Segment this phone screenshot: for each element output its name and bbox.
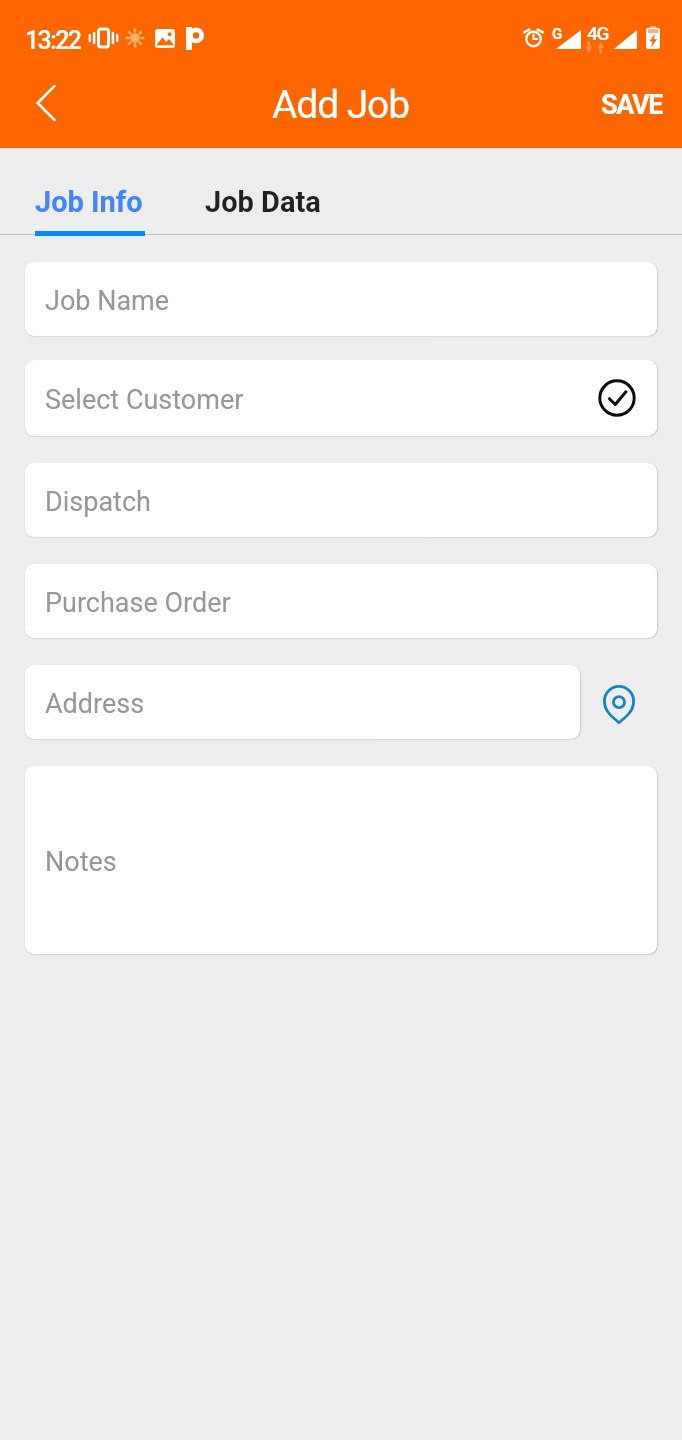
staticText: Address	[45, 688, 145, 720]
staticText: Job Info	[35, 185, 143, 219]
button[interactable]: Job Name	[25, 262, 657, 336]
button[interactable]: Purchase Order	[25, 564, 657, 638]
staticText: Job Data	[205, 185, 321, 219]
button[interactable]: Job Data	[177, 148, 349, 236]
staticText: 13:22	[25, 26, 81, 55]
button[interactable]: Address	[25, 665, 580, 739]
button[interactable]: Pick location on map	[580, 665, 657, 739]
staticText: Purchase Order	[45, 587, 231, 619]
button[interactable]: SAVE	[576, 76, 682, 134]
button[interactable]: Dispatch	[25, 463, 657, 537]
staticText: Select Customer	[45, 384, 244, 416]
button[interactable]: Back	[14, 71, 78, 135]
staticText: Dispatch	[45, 486, 151, 518]
staticText: Notes	[45, 846, 117, 878]
button[interactable]: Job Info	[0, 148, 177, 236]
staticText: 4G	[587, 22, 608, 44]
staticText: Job Name	[45, 285, 170, 317]
button[interactable]: Notes	[25, 766, 657, 954]
staticText: SAVE	[601, 89, 662, 121]
staticText: G	[552, 25, 563, 43]
button[interactable]: Select Customer	[25, 360, 657, 436]
staticText: Add Job	[272, 82, 410, 128]
